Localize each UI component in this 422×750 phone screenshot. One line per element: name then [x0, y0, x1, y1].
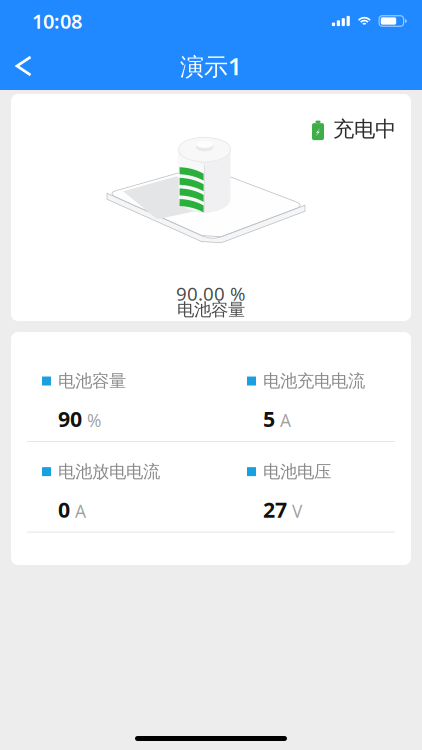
staticText: 电池电压 — [263, 461, 331, 482]
button[interactable]: Back — [0, 44, 43, 88]
staticText: 充电中 — [333, 116, 396, 142]
staticText: 电池放电电流 — [58, 461, 160, 482]
staticText: 电池容量 — [177, 299, 245, 320]
staticText: 5 — [263, 405, 275, 433]
staticText: % — [87, 409, 101, 432]
staticText: 27 — [263, 495, 287, 524]
staticText: A — [75, 499, 86, 522]
staticText: 演示1 — [180, 50, 242, 82]
staticText: 电池容量 — [58, 370, 126, 392]
staticText: 电池充电电流 — [263, 370, 365, 392]
staticText: 10:08 — [32, 8, 82, 34]
staticText: V — [292, 499, 302, 522]
staticText: 90.00 % — [176, 281, 246, 306]
staticText: A — [280, 409, 291, 432]
staticText: 90 — [58, 405, 82, 433]
staticText: 0 — [58, 495, 70, 524]
